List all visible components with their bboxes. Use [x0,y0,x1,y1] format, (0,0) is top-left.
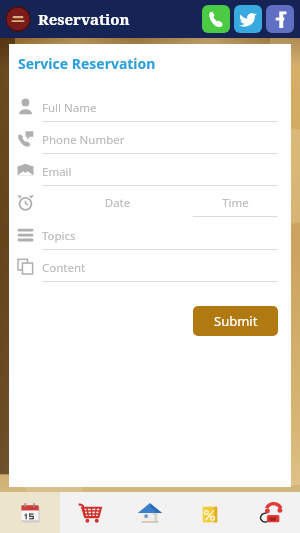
staticText: Content [42,260,86,276]
button[interactable]: Twitter [234,5,262,33]
staticText: Submit [214,312,258,330]
staticText: Service Reservation [18,54,156,73]
staticText: Topics [42,228,76,244]
button[interactable]: Time field [193,186,278,218]
button[interactable]: Full Name field [9,90,291,122]
button[interactable]: Offers [180,492,240,533]
button[interactable]: Date field [42,186,193,218]
button[interactable]: Phone Number field [9,122,291,154]
staticText: Phone Number [42,132,125,148]
button[interactable]: Email field [9,154,291,186]
button[interactable]: Call [202,5,230,33]
button[interactable]: Home [120,492,180,533]
staticText: Date [42,195,193,211]
staticText: Reservation [38,9,130,29]
button[interactable]: Topics field [9,218,291,250]
button[interactable]: Contact [240,492,300,533]
staticText: Time [193,195,278,211]
button[interactable]: Cart [60,492,120,533]
button[interactable]: Content field [9,250,291,282]
button[interactable]: Submit [193,306,278,336]
button[interactable]: Facebook [266,5,294,33]
staticText: Email [42,164,72,180]
button[interactable]: Logo [6,7,30,31]
button[interactable]: Calendar [0,492,60,533]
staticText: Full Name [42,100,97,116]
